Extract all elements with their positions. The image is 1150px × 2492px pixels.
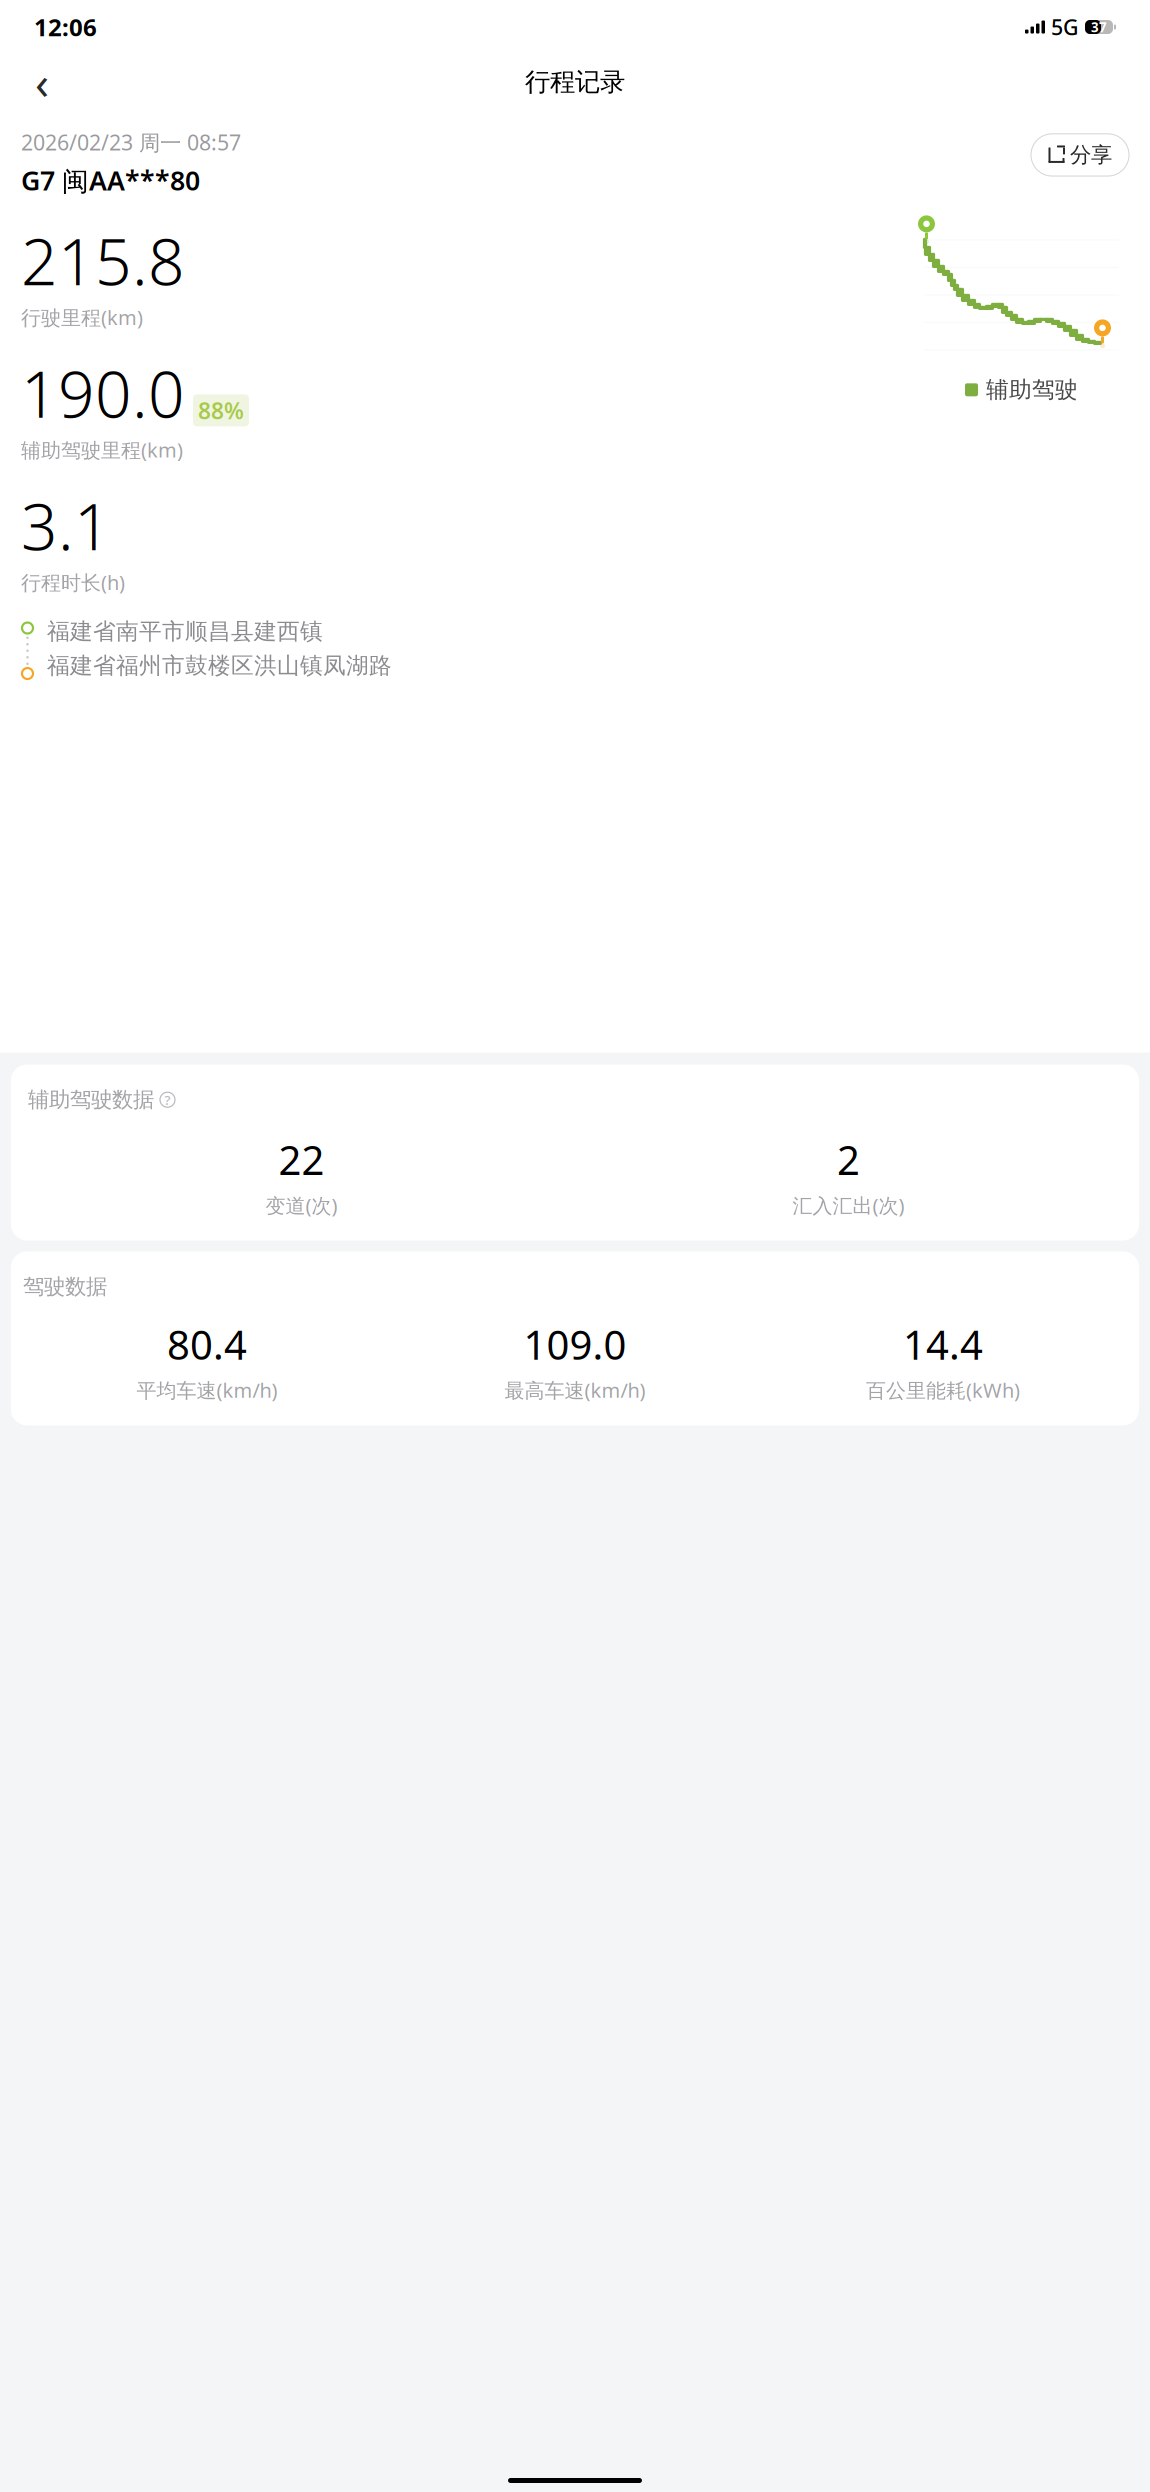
staticText: 辅助驾驶数据 (28, 1087, 154, 1113)
staticText: 辅助驾驶里程(km) (21, 436, 183, 463)
staticText: 福建省南平市顺昌县建西镇 (47, 617, 323, 645)
staticText: 14.4 (903, 1318, 983, 1371)
staticText: 22 (278, 1133, 324, 1186)
staticText: 88% (198, 395, 244, 425)
staticText: G7 闽AA***80 (21, 162, 200, 198)
button[interactable]: 辅助驾驶数据说明 (160, 1091, 175, 1109)
staticText: 分享 (1070, 142, 1112, 168)
staticText: ? (164, 1091, 170, 1109)
staticText: 190.0 (21, 350, 185, 435)
staticText: 百公里能耗(kWh) (866, 1377, 1020, 1403)
button[interactable]: 返回 (18, 60, 66, 104)
staticText: 汇入汇出(次) (792, 1192, 904, 1218)
button[interactable]: 分享 (1031, 134, 1129, 176)
staticText: 2026/02/23 周一 08:57 (21, 128, 241, 156)
staticText: 109.0 (523, 1318, 626, 1371)
staticText: 行驶里程(km) (21, 304, 143, 330)
staticText: 2 (837, 1133, 860, 1186)
staticText: 80.4 (167, 1318, 247, 1371)
staticText: 辅助驾驶 (986, 376, 1078, 404)
staticText: 12:06 (34, 11, 97, 43)
staticText: 变道(次) (265, 1192, 337, 1218)
staticText: 福建省福州市鼓楼区洪山镇凤湖路 (47, 652, 392, 679)
staticText: 5G (1051, 13, 1079, 41)
staticText: 行程记录 (525, 66, 625, 97)
staticText: 215.8 (21, 218, 185, 303)
staticText: 行程时长(h) (21, 569, 125, 596)
staticText: 平均车速(km/h) (136, 1377, 277, 1403)
staticText: 最高车速(km/h) (504, 1377, 645, 1403)
staticText: 驾驶数据 (23, 1273, 107, 1300)
staticText: 37 (1091, 18, 1107, 36)
staticText: ‹ (35, 52, 49, 112)
staticText: 3.1 (21, 483, 111, 568)
